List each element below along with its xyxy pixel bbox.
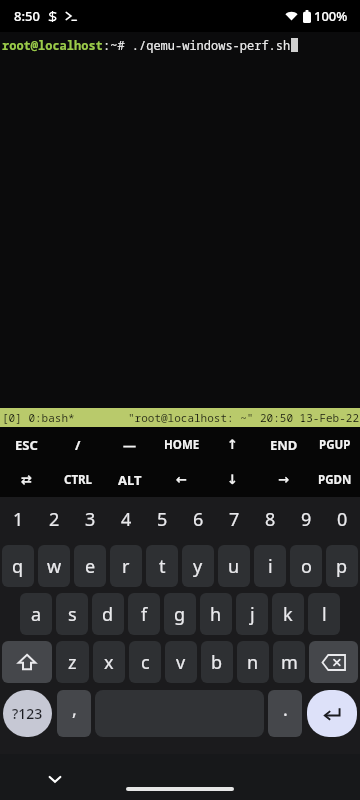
staticText: x [104,650,114,675]
button[interactable]: 5 [144,497,180,542]
staticText: r [122,554,130,579]
button[interactable]: Shift [2,641,52,683]
staticText: / [75,436,81,454]
button[interactable]: g [164,593,196,635]
staticText: "root@localhost: ~" 20:50 13-Feb-22 [128,410,359,425]
staticText: c [141,650,150,675]
staticText: 7 [229,507,240,532]
button[interactable]: ⇄ [0,462,52,497]
button[interactable]: 0 [324,497,360,542]
button[interactable]: b [201,641,233,683]
button[interactable]: END [258,427,309,462]
button[interactable]: Hide keyboard [42,766,68,792]
button[interactable]: f [128,593,160,635]
button[interactable]: e [74,545,106,587]
button[interactable]: q [2,545,34,587]
button[interactable]: ↓ [207,462,258,497]
button[interactable]: y [182,545,214,587]
button[interactable]: k [272,593,304,635]
staticText: ALT [118,471,142,489]
button[interactable]: s [56,593,88,635]
staticText: [0] 0:bash* [2,410,75,425]
staticText: d [102,602,114,627]
button[interactable]: a [20,593,52,635]
button[interactable]: u [218,545,250,587]
staticText: 5 [157,507,168,532]
button[interactable]: z [56,641,89,683]
button[interactable]: ESC [0,427,52,462]
staticText: 8 [265,507,276,532]
staticText: y [193,554,203,579]
staticText: ESC [15,436,38,454]
button[interactable]: p [326,545,358,587]
button[interactable]: Enter [307,690,357,737]
staticText: , [72,697,77,722]
button[interactable]: 2 [36,497,72,542]
staticText: w [47,554,62,579]
staticText: ⇄ [21,472,32,487]
staticText: 6 [193,507,204,532]
button[interactable]: 6 [180,497,216,542]
staticText: END [270,436,298,454]
button[interactable]: . [268,690,302,737]
staticText: ↓ [227,472,238,487]
button[interactable]: HOME [156,427,207,462]
button[interactable]: r [110,545,142,587]
button[interactable]: 8 [252,497,288,542]
button[interactable]: d [92,593,124,635]
button[interactable]: o [290,545,322,587]
button[interactable]: n [237,641,269,683]
button[interactable]: m [273,641,305,683]
staticText: 9 [301,507,312,532]
button[interactable]: ALT [104,462,156,497]
button[interactable]: PGUP [309,427,360,462]
staticText: p [336,554,348,579]
button[interactable]: t [146,545,178,587]
button[interactable]: l [308,593,340,635]
staticText: 100% [314,7,348,25]
button[interactable]: 7 [216,497,252,542]
staticText: z [68,650,77,675]
staticText: b [211,650,223,675]
button[interactable]: ← [156,462,207,497]
button[interactable]: , [57,690,91,737]
button[interactable]: CTRL [52,462,104,497]
button[interactable]: → [258,462,309,497]
staticText: i [268,554,273,579]
button[interactable]: x [93,641,125,683]
staticText: t [159,554,166,579]
staticText: root@localhost [2,37,103,53]
button[interactable]: c [129,641,161,683]
staticText: l [322,602,327,627]
button[interactable]: Backspace [309,641,358,683]
staticText: u [228,554,240,579]
button[interactable]: i [254,545,286,587]
staticText: 4 [121,507,132,532]
button[interactable]: 9 [288,497,324,542]
staticText: k [283,602,293,627]
staticText: a [31,602,42,627]
staticText: CTRL [64,472,92,488]
staticText: 1 [13,507,24,532]
button[interactable]: j [236,593,268,635]
button[interactable]: ?123 [3,690,52,737]
staticText: PGDN [318,472,352,488]
button[interactable]: v [165,641,197,683]
button[interactable]: 3 [72,497,108,542]
button[interactable]: — [104,427,156,462]
button[interactable]: PGDN [309,462,360,497]
button[interactable]: w [38,545,70,587]
staticText: g [174,602,186,627]
staticText: h [210,602,222,627]
staticText: → [278,472,289,487]
staticText: 8:50 [14,7,40,25]
button[interactable]: ↑ [207,427,258,462]
staticText: ↑ [227,437,238,452]
button[interactable]: / [52,427,104,462]
button[interactable]: h [200,593,232,635]
staticText: f [141,602,148,627]
button[interactable]: 1 [0,497,36,542]
staticText: q [12,554,24,579]
button[interactable]: 4 [108,497,144,542]
